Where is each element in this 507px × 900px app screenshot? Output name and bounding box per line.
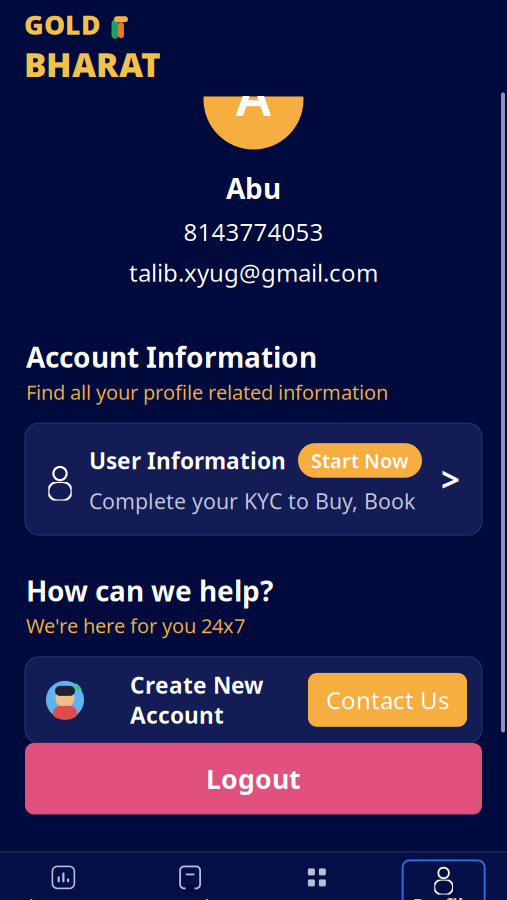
staticText: Find all your profile related informatio… — [26, 379, 388, 405]
button[interactable]: Live Rates — [0, 860, 127, 900]
staticText: Abu — [226, 169, 281, 207]
staticText: My Orders — [144, 893, 237, 900]
staticText: A — [235, 60, 271, 131]
staticText: Profile — [413, 893, 475, 900]
button[interactable]: Profile — [380, 860, 507, 900]
staticText: > — [441, 457, 460, 501]
staticText: Contact Us — [326, 684, 449, 716]
button[interactable]: Logout — [25, 743, 482, 814]
button[interactable]: My Orders — [127, 860, 254, 900]
staticText: We're here for you 24x7 — [26, 612, 245, 639]
staticText: Account Information — [26, 338, 317, 376]
button[interactable]: Contact Us — [308, 673, 467, 727]
staticText: GOLD — [24, 7, 101, 42]
staticText: 8143774053 — [183, 216, 323, 248]
button[interactable]: User Information — [25, 423, 482, 535]
staticText: User Information — [89, 445, 286, 475]
staticText: BHARAT — [24, 42, 161, 86]
staticText: Logout — [206, 761, 301, 796]
staticText: talib.xyug@gmail.com — [129, 256, 378, 288]
staticText: How can we help? — [26, 572, 273, 609]
staticText: Live Rates — [19, 893, 108, 900]
button[interactable]: Menu — [253, 860, 380, 900]
staticText: Start Now — [311, 447, 409, 474]
staticText: Complete your KYC to Buy, Book — [89, 487, 415, 515]
staticText: Create New Account — [130, 670, 263, 730]
